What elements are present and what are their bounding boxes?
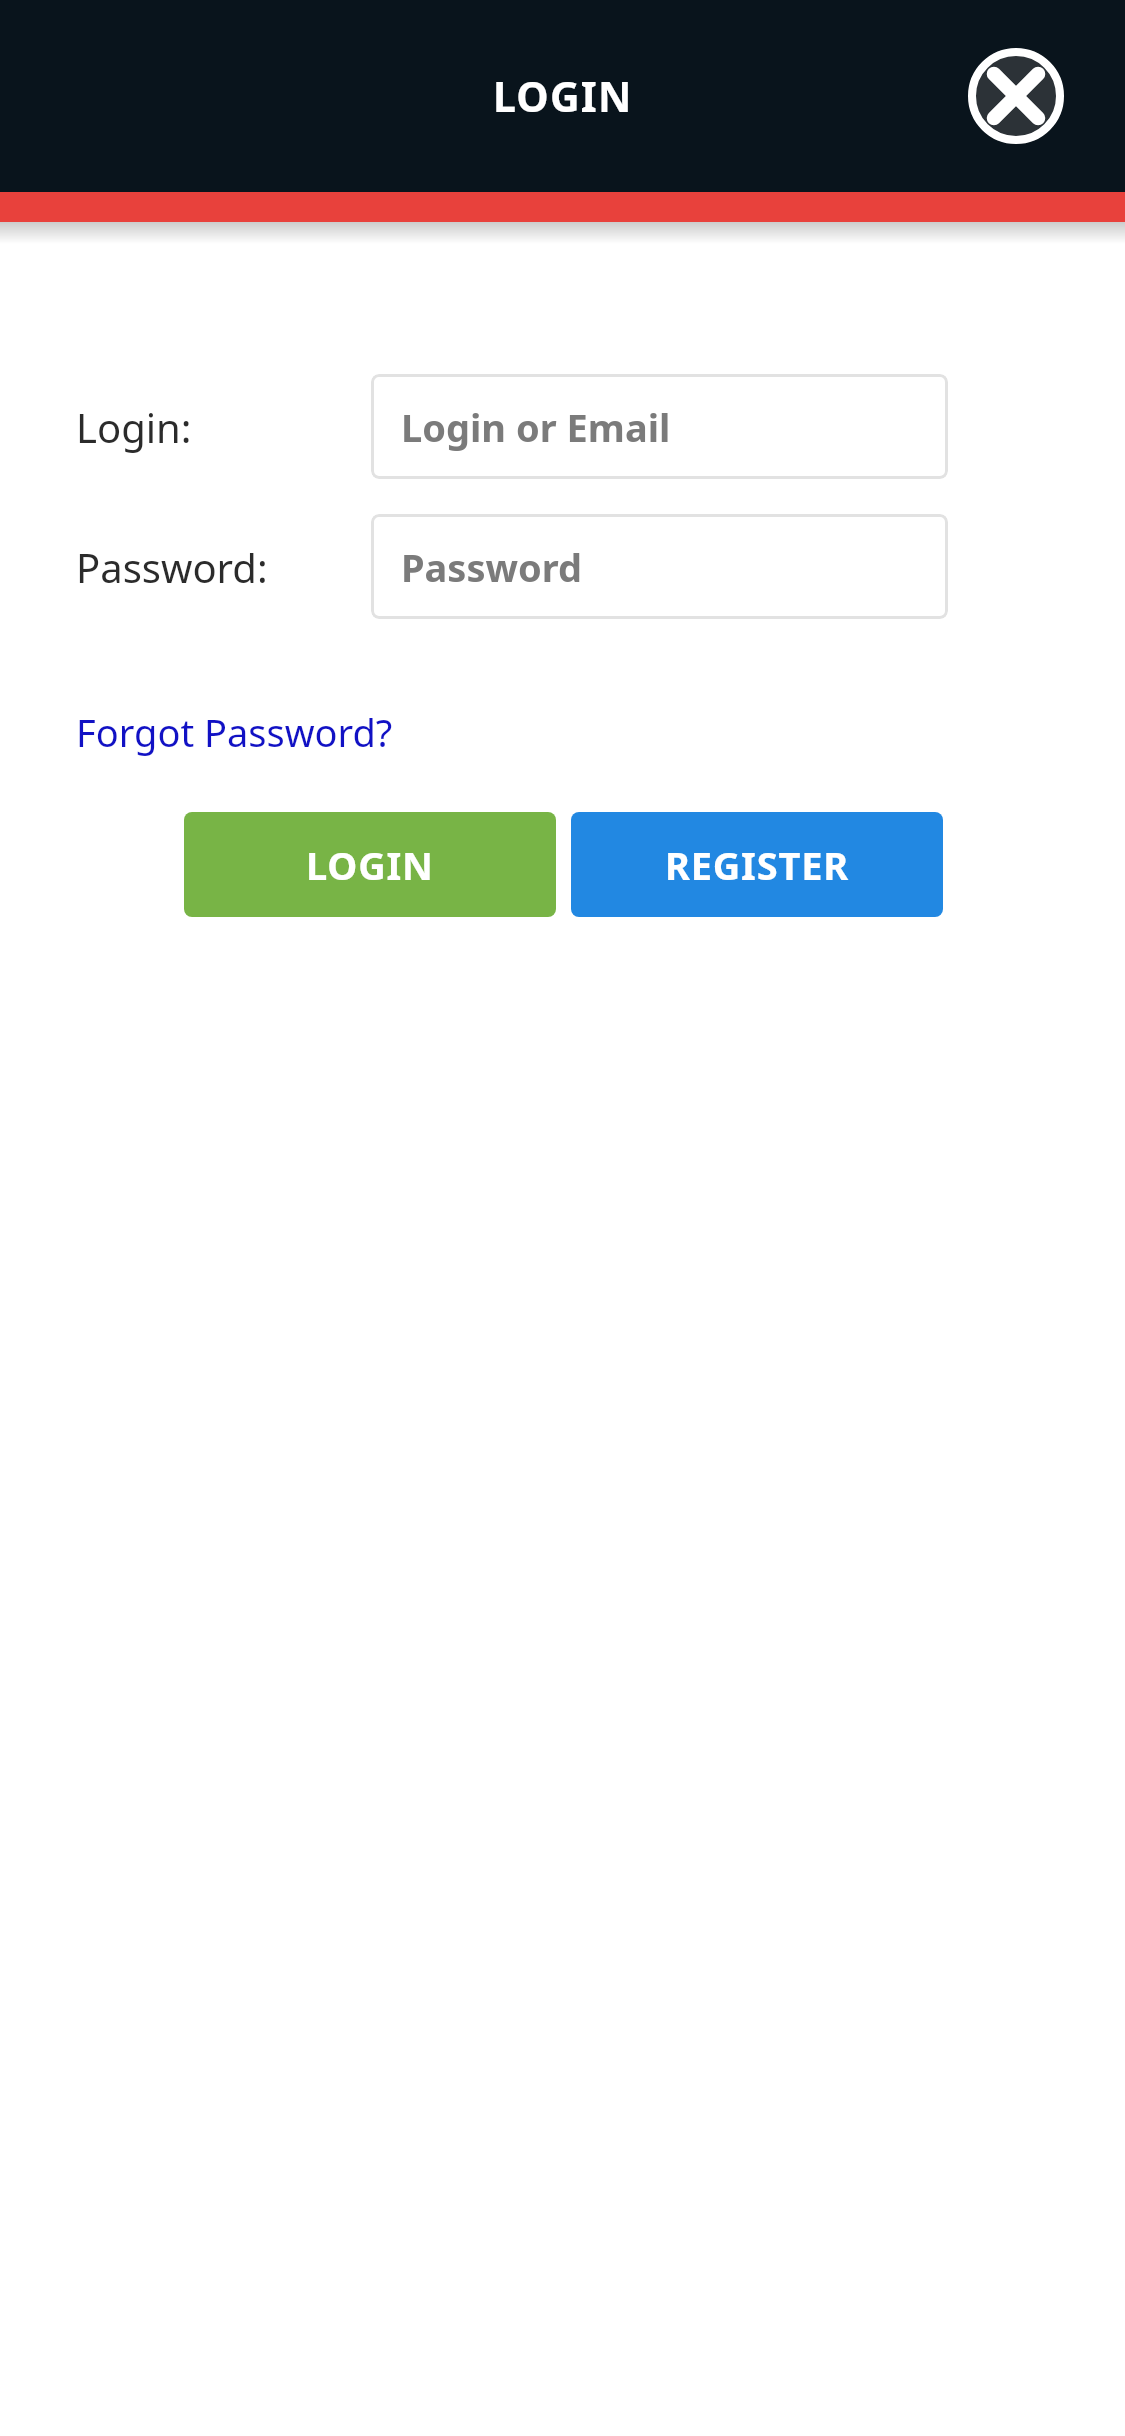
button[interactable]: LOGIN [184, 812, 556, 917]
button[interactable]: Forgot Password? [76, 702, 393, 762]
staticText: Forgot Password? [76, 706, 393, 758]
button[interactable]: Close [964, 44, 1068, 148]
button[interactable]: Password [371, 514, 948, 619]
staticText: Login or Email [401, 401, 671, 453]
staticText: LOGIN [306, 839, 434, 891]
staticText: Password [401, 541, 583, 593]
staticText: REGISTER [665, 839, 849, 891]
button[interactable]: Login or Email [371, 374, 948, 479]
button[interactable]: REGISTER [571, 812, 943, 917]
staticText: Password: [76, 540, 268, 594]
staticText: LOGIN [493, 68, 633, 124]
staticText: Login: [76, 400, 192, 454]
